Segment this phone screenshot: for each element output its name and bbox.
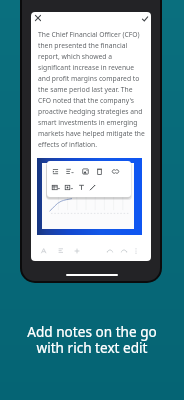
- button[interactable]: Insert: [71, 245, 83, 257]
- button[interactable]: Paragraph: [55, 245, 67, 257]
- button[interactable]: Text style: [76, 182, 87, 193]
- button[interactable]: Indent: [50, 166, 61, 177]
- button[interactable]: Fill colour: [63, 182, 74, 193]
- staticText: The Chief Financial Officer (CFO) then p…: [38, 29, 145, 150]
- button[interactable]: Selected chart: [37, 158, 142, 235]
- button[interactable]: More options: [130, 245, 142, 257]
- button[interactable]: Text format: [38, 245, 50, 257]
- button[interactable]: Draw: [87, 182, 98, 193]
- button[interactable]: Redo: [118, 245, 130, 257]
- staticText: Add notes on the go with rich text edit: [0, 324, 184, 356]
- button[interactable]: Close: [32, 12, 44, 24]
- button[interactable]: List style: [64, 166, 75, 177]
- button[interactable]: Undo: [104, 245, 116, 257]
- button[interactable]: Link: [110, 166, 121, 177]
- button[interactable]: Insert image: [80, 166, 91, 177]
- button[interactable]: Done: [139, 13, 151, 25]
- button[interactable]: Table: [50, 182, 61, 193]
- button[interactable]: Delete: [94, 166, 105, 177]
